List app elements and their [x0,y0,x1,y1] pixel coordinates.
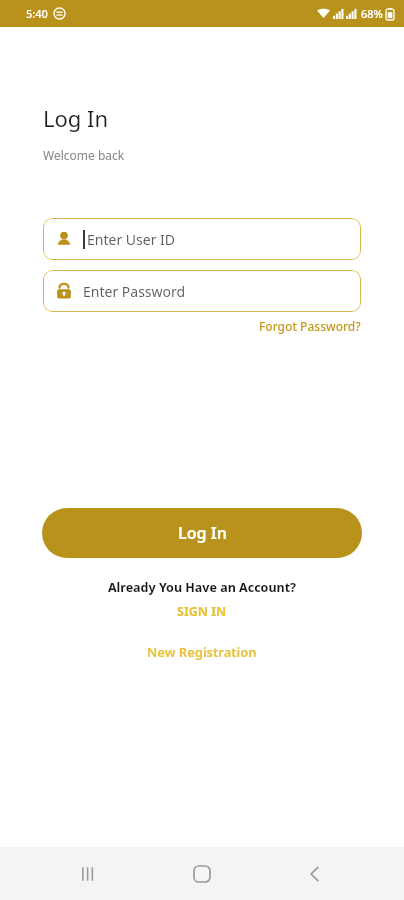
button[interactable]: SIGN IN [171,602,233,621]
staticText: Log In [178,522,227,544]
staticText: Welcome back [43,147,125,163]
button[interactable]: Back [291,850,339,898]
other: User [55,230,73,248]
button[interactable]: New Registration [141,642,263,662]
staticText: Enter User ID [87,230,176,249]
button[interactable]: Forgot Password? [259,318,361,334]
button[interactable]: Password [43,270,361,312]
button[interactable]: Recent apps [65,850,113,898]
button[interactable]: User [43,218,361,260]
button[interactable]: Home [178,850,226,898]
staticText: Already You Have an Account? [0,579,404,596]
other: Password [55,282,73,300]
staticText: Enter Password [83,282,186,301]
button[interactable]: Log In [42,508,362,558]
staticText: 68% [361,6,383,21]
staticText: Log In [43,103,109,133]
staticText: 5:40 [26,6,48,21]
